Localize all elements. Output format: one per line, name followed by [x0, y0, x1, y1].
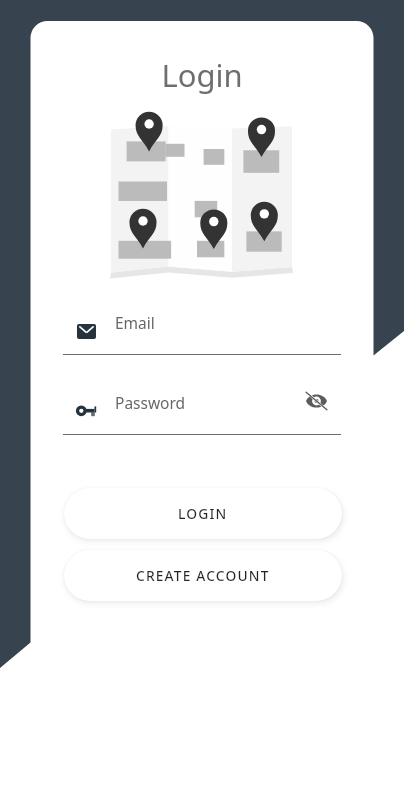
- button[interactable]: LOGIN: [64, 488, 342, 539]
- staticText: Password: [115, 392, 186, 413]
- button[interactable]: Show password: [301, 389, 332, 413]
- staticText: LOGIN: [178, 504, 228, 523]
- staticText: Login: [0, 54, 404, 96]
- button[interactable]: CREATE ACCOUNT: [64, 550, 342, 601]
- button[interactable]: Password: [63, 388, 341, 435]
- staticText: CREATE ACCOUNT: [136, 566, 270, 585]
- staticText: Email: [115, 312, 155, 333]
- button[interactable]: Email: [63, 308, 341, 355]
